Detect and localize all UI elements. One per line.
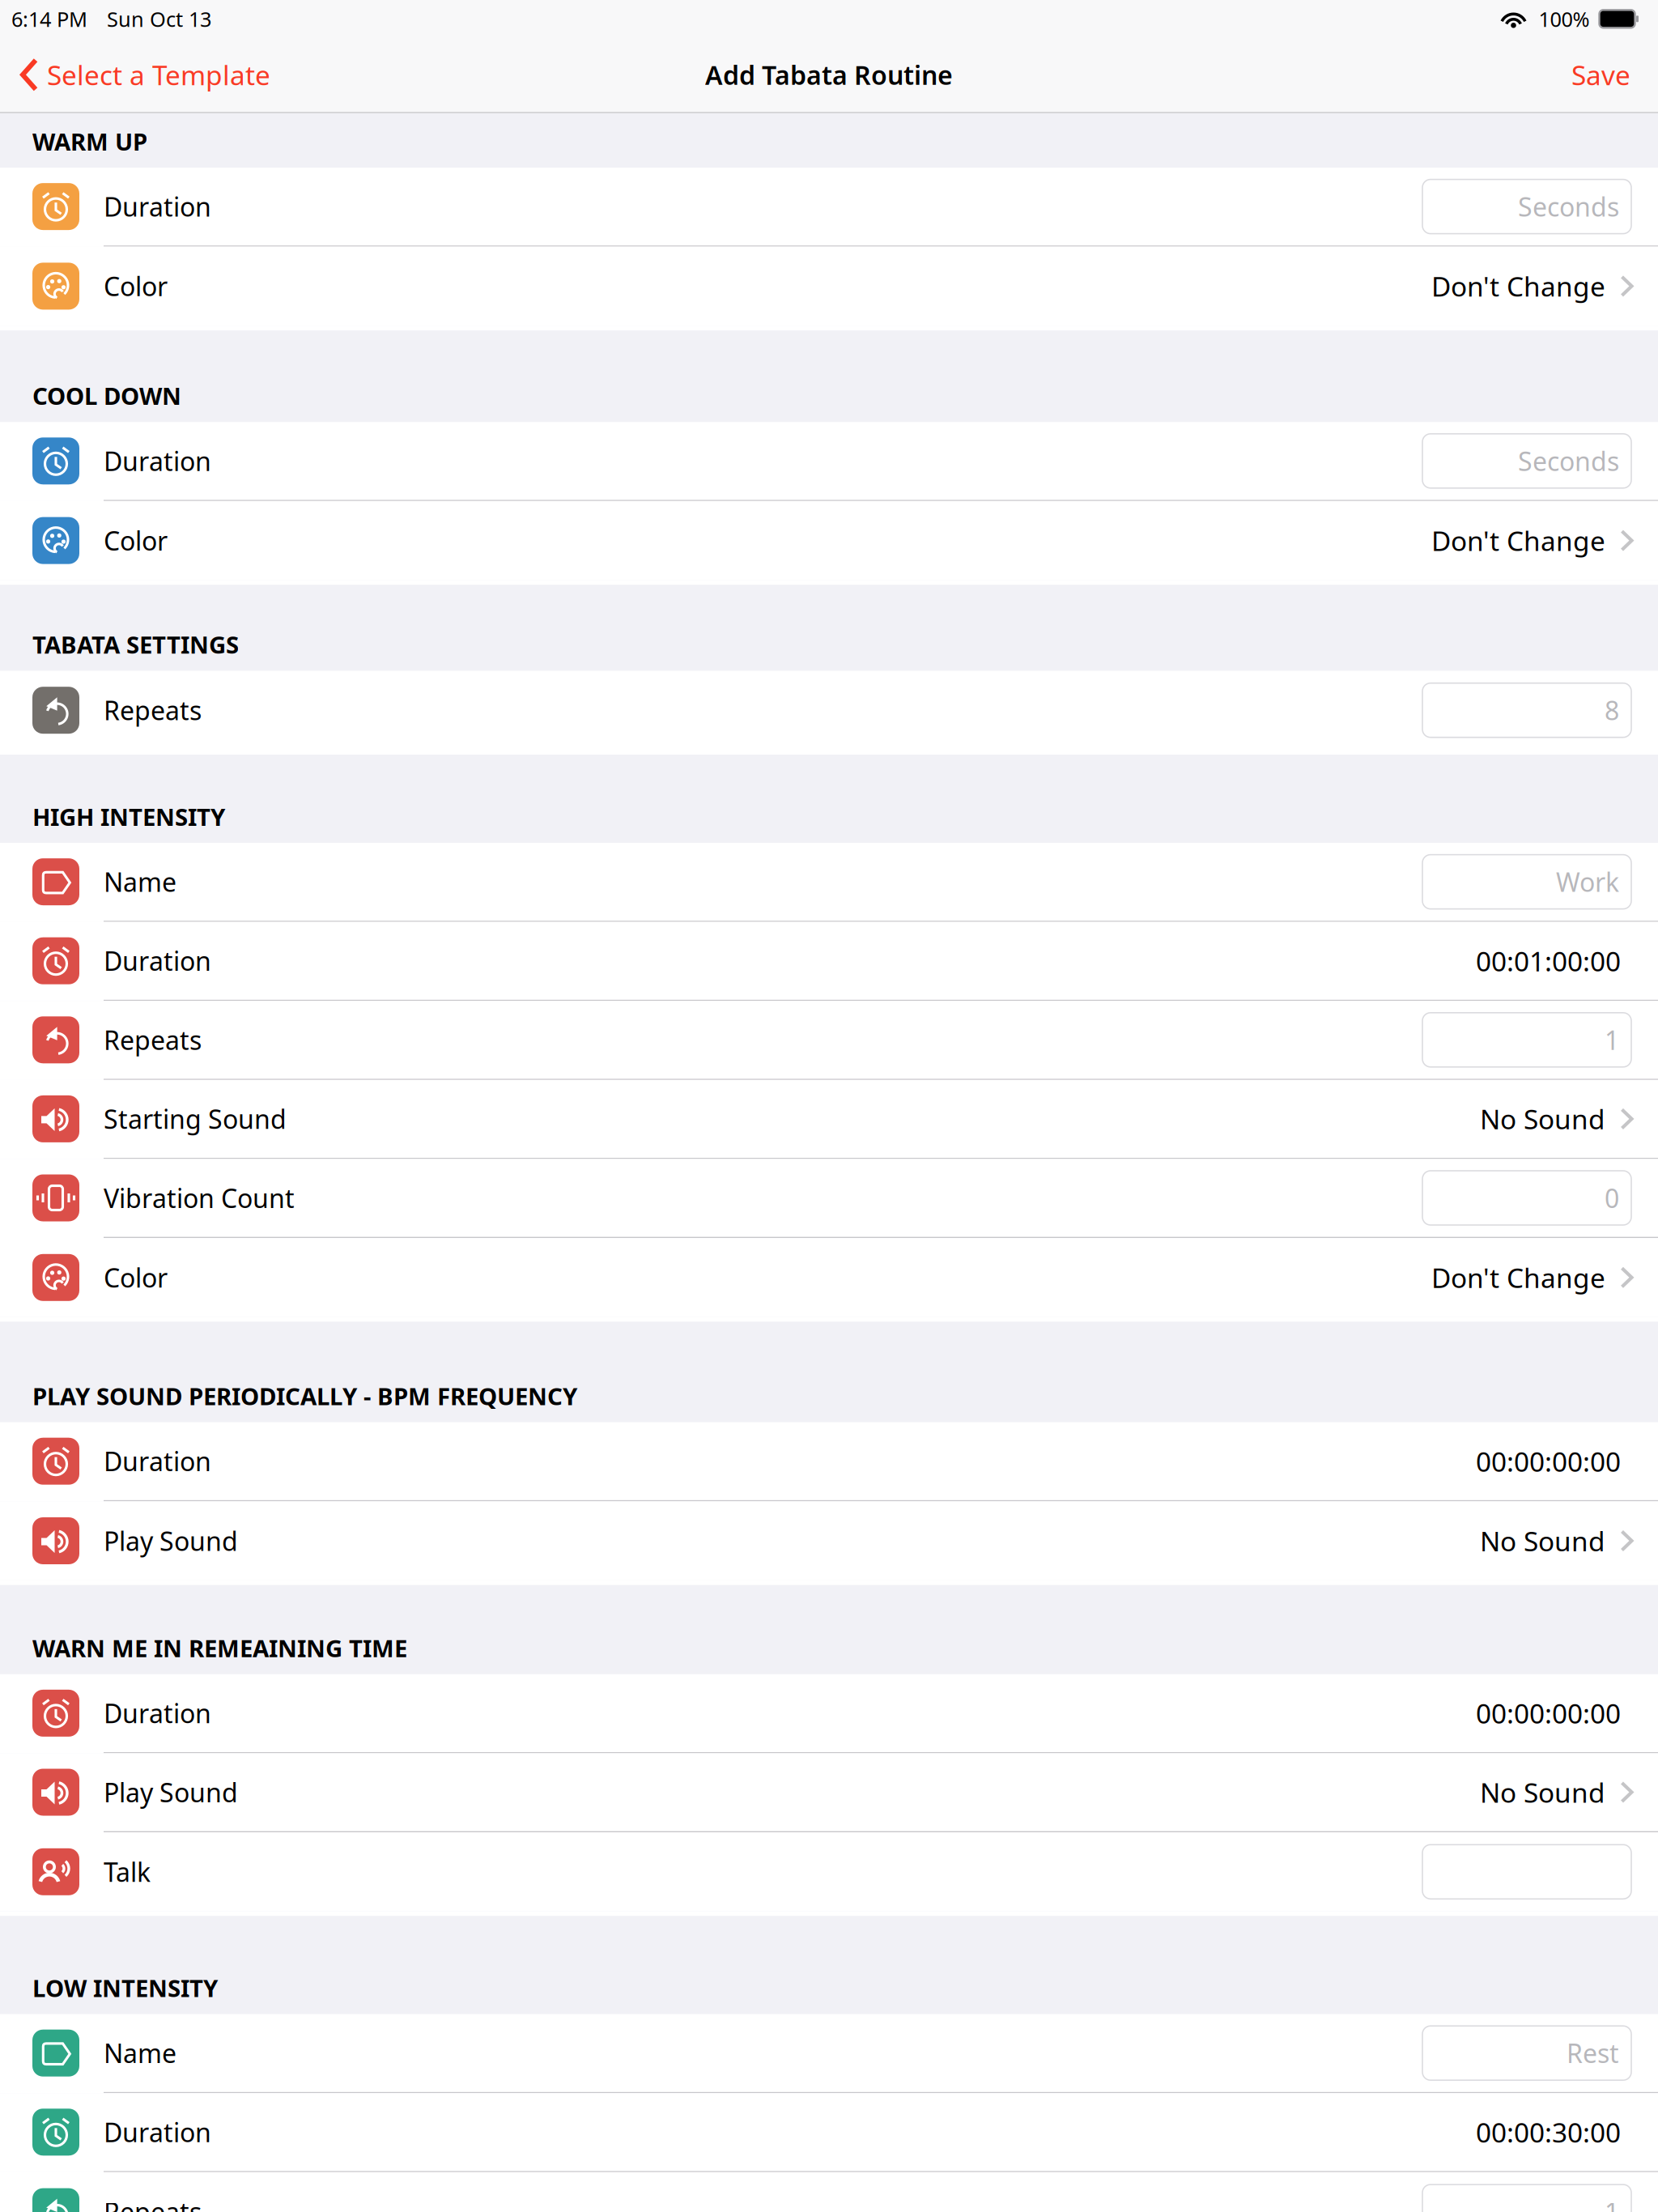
staticText: LOW INTENSITY [32,1972,218,2004]
button[interactable]: Select a Template [0,37,287,112]
staticText: Duration [104,2115,211,2149]
staticText: Name [104,865,176,899]
staticText: Repeats [104,1023,202,1057]
button[interactable]: Repeats [0,671,1658,750]
staticText: WARN ME IN REMEAINING TIME [32,1632,407,1664]
staticText: Duration [104,189,211,224]
staticText: TABATA SETTINGS [32,629,239,660]
staticText: Duration [104,1444,211,1478]
staticText: No Sound [1480,1101,1605,1137]
staticText: 00:01:00:00 [1476,943,1621,979]
staticText: Add Tabata Routine [705,58,953,92]
staticText: Color [104,1260,168,1295]
staticText: Duration [104,944,211,978]
button[interactable]: Color [0,501,1658,580]
button[interactable]: Save [1552,37,1658,112]
button[interactable]: Repeats [0,1001,1658,1080]
staticText: Don't Change [1431,1260,1605,1295]
staticText: Work [1556,865,1619,899]
button[interactable]: Duration [0,1674,1658,1753]
staticText: Save [1571,57,1630,93]
button[interactable]: Duration [0,922,1658,1001]
staticText: WARM UP [32,125,147,157]
staticText: Duration [104,444,211,478]
staticText: Select a Template [47,57,270,93]
staticText: Don't Change [1431,268,1605,304]
staticText: No Sound [1480,1523,1605,1559]
staticText: Talk [104,1855,151,1889]
staticText: HIGH INTENSITY [32,801,225,832]
button[interactable]: Name [0,2014,1658,2093]
button[interactable]: Duration [0,2093,1658,2172]
staticText: Repeats [104,693,202,727]
staticText: 00:00:00:00 [1476,1695,1621,1731]
button[interactable]: Talk [0,1832,1658,1911]
staticText: 1 [1605,1023,1619,1057]
staticText: Duration [104,1696,211,1730]
button[interactable]: Starting Sound [0,1080,1658,1159]
staticText: No Sound [1480,1774,1605,1810]
button[interactable]: Duration [0,1422,1658,1501]
staticText: Play Sound [104,1775,238,1809]
button[interactable]: Duration [0,422,1658,501]
button[interactable]: Vibration Count [0,1159,1658,1238]
button[interactable]: Name [0,843,1658,922]
staticText: 00:00:00:00 [1476,1443,1621,1479]
staticText: Seconds [1518,444,1619,478]
button[interactable]: Play Sound [0,1501,1658,1580]
staticText: Rest [1567,2036,1619,2070]
staticText: Seconds [1518,189,1619,224]
staticText: Name [104,2036,176,2070]
staticText: Play Sound [104,1524,238,1558]
button[interactable]: Play Sound [0,1753,1658,1832]
button[interactable]: Repeats [0,2172,1658,2212]
staticText: 6:14 PM [11,5,87,32]
staticText: 8 [1605,693,1619,727]
staticText: Sun Oct 13 [107,5,211,32]
staticText: Color [104,269,168,303]
staticText: 0 [1605,1181,1619,1215]
staticText: 1 [1605,2195,1619,2212]
button[interactable]: Color [0,1238,1658,1317]
staticText: Color [104,523,168,558]
button[interactable]: Duration [0,168,1658,247]
staticText: COOL DOWN [32,380,181,411]
staticText: 100% [1539,5,1590,32]
staticText: Repeats [104,2195,202,2212]
staticText: PLAY SOUND PERIODICALLY - BPM FREQUENCY [32,1380,577,1412]
staticText: 00:00:30:00 [1476,2114,1621,2150]
staticText: Don't Change [1431,523,1605,559]
staticText: Vibration Count [104,1181,295,1215]
button[interactable]: Color [0,247,1658,326]
staticText: Starting Sound [104,1102,287,1136]
